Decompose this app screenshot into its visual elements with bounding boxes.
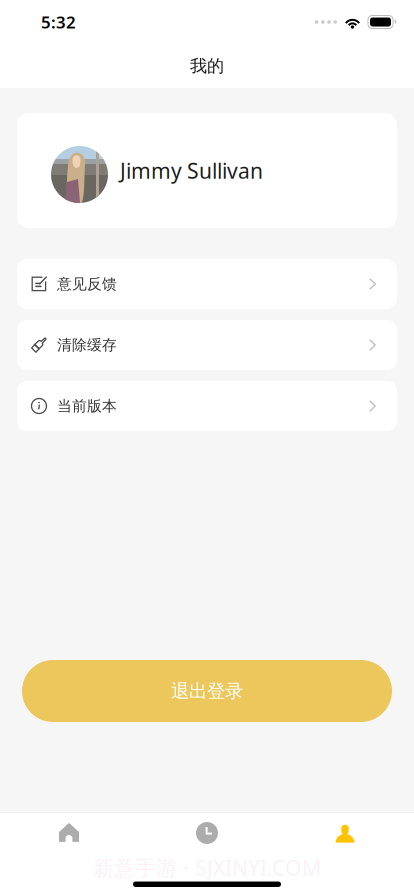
button[interactable]: 首页 (0, 812, 138, 853)
staticText: 我的 (190, 55, 224, 77)
staticText: 清除缓存 (57, 336, 117, 354)
staticText: Jimmy Sullivan (120, 156, 263, 185)
staticText: 当前版本 (57, 397, 117, 415)
button[interactable]: 记录 (138, 812, 276, 853)
staticText: 意见反馈 (57, 275, 117, 293)
button[interactable]: 意见反馈 (17, 259, 397, 309)
staticText: 新意手游 · SJXINYI.COM (93, 853, 321, 882)
button[interactable]: 我的 (276, 812, 414, 853)
staticText: 退出登录 (171, 679, 243, 703)
button[interactable]: 退出登录 (22, 660, 392, 722)
button[interactable]: 清除缓存 (17, 320, 397, 370)
staticText: 5:32 (41, 11, 76, 33)
button[interactable]: 当前版本 (17, 381, 397, 431)
